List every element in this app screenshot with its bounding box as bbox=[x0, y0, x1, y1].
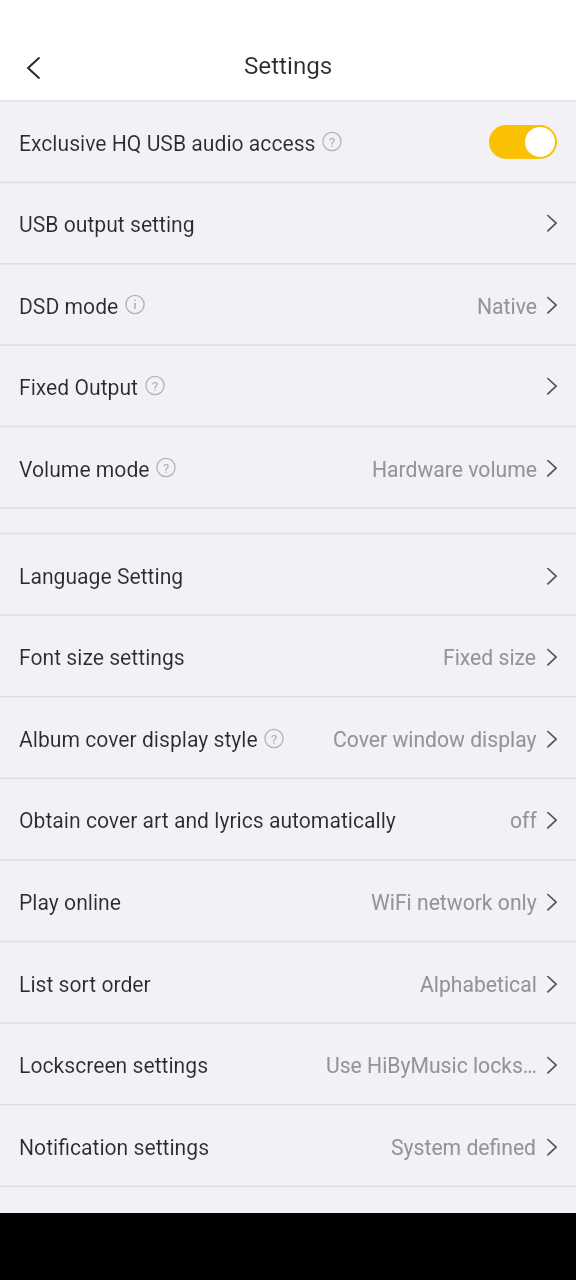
button[interactable]: Album cover display style bbox=[0, 698, 576, 779]
staticText: Fixed Output bbox=[19, 375, 139, 400]
staticText: WiFi network only bbox=[371, 890, 537, 915]
button[interactable]: Exclusive HQ USB audio access bbox=[0, 102, 576, 182]
button[interactable]: Lockscreen settings bbox=[0, 1024, 576, 1105]
button[interactable]: Toggle bbox=[489, 125, 557, 159]
staticText: Settings bbox=[244, 52, 333, 80]
button[interactable]: List sort order bbox=[0, 943, 576, 1024]
button[interactable]: Fixed Output bbox=[0, 346, 576, 426]
button[interactable]: Play online bbox=[0, 861, 576, 942]
staticText: ? bbox=[329, 134, 336, 149]
staticText: Notification settings bbox=[19, 1135, 210, 1160]
button[interactable]: DSD mode bbox=[0, 265, 576, 345]
button[interactable]: USB output setting bbox=[0, 183, 576, 263]
staticText: Volume mode bbox=[19, 457, 150, 482]
staticText: Album cover display style bbox=[19, 727, 258, 752]
staticText: ? bbox=[163, 460, 170, 475]
button[interactable]: Font size settings bbox=[0, 616, 576, 697]
button[interactable]: Obtain cover art and lyrics automaticall… bbox=[0, 779, 576, 860]
staticText: Lockscreen settings bbox=[19, 1053, 209, 1078]
button[interactable]: Back bbox=[5, 40, 61, 96]
staticText: DSD mode bbox=[19, 294, 119, 319]
staticText: Hardware volume bbox=[372, 457, 537, 482]
staticText: off bbox=[510, 808, 537, 833]
staticText: Use HiByMusic locks… bbox=[326, 1053, 537, 1078]
staticText: Alphabetical bbox=[420, 972, 537, 997]
staticText: Language Setting bbox=[19, 564, 184, 589]
staticText: Play online bbox=[19, 890, 121, 915]
staticText: ? bbox=[271, 731, 278, 746]
staticText: Obtain cover art and lyrics automaticall… bbox=[19, 808, 396, 833]
staticText: Native bbox=[477, 294, 537, 319]
staticText: System defined bbox=[391, 1135, 537, 1160]
button[interactable]: Language Setting bbox=[0, 535, 576, 616]
staticText: ? bbox=[152, 378, 159, 393]
staticText: Fixed size bbox=[443, 645, 537, 670]
staticText: Font size settings bbox=[19, 645, 185, 670]
button[interactable]: Notification settings bbox=[0, 1106, 576, 1187]
button[interactable]: Volume mode bbox=[0, 428, 576, 508]
staticText: Exclusive HQ USB audio access bbox=[19, 131, 316, 156]
staticText: USB output setting bbox=[19, 212, 195, 237]
staticText: List sort order bbox=[19, 972, 151, 997]
staticText: Cover window display bbox=[333, 727, 537, 752]
